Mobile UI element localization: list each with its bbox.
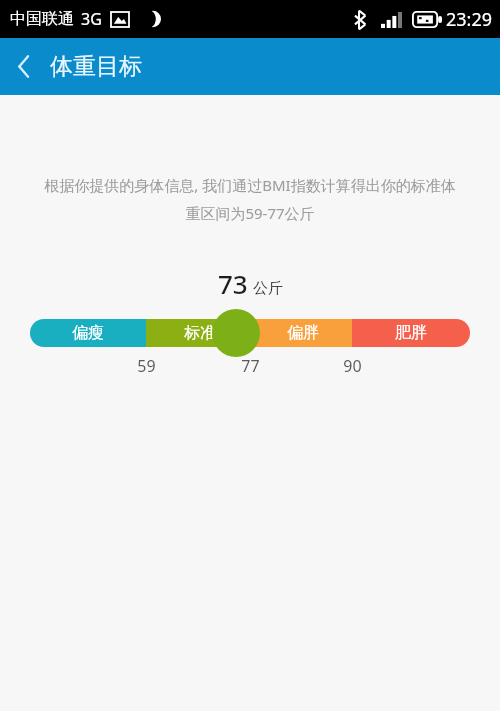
staticText: 体重目标 [50,52,142,81]
staticText: 中国联通 [10,9,74,29]
staticText: 59 [137,355,156,377]
staticText: 偏瘦 [72,323,104,343]
staticText: 公斤 [253,279,283,298]
button[interactable]: 偏瘦 [30,319,470,347]
staticText: 73 [218,266,248,301]
staticText: 77 [241,355,260,377]
staticText: 3G [81,8,102,30]
staticText: 肥胖 [395,323,427,343]
staticText: 根据你提供的身体信息, 我们通过BMI指数计算得出你的标准体重区间为59-77公… [42,175,458,224]
staticText: 90 [343,355,362,377]
button[interactable]: Back [0,38,46,95]
button[interactable]: Weight slider thumb [212,309,260,357]
staticText: 偏胖 [287,323,319,343]
staticText: 23:29 [446,7,493,32]
staticText: 标准 [184,323,216,343]
